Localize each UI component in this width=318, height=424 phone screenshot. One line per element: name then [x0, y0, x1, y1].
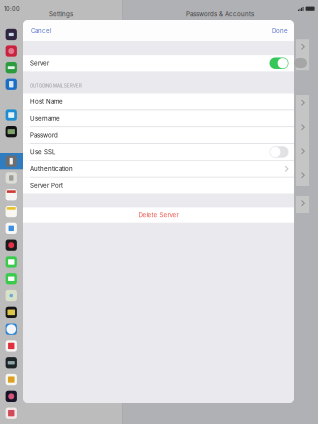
- button[interactable]: Password: [23, 127, 294, 143]
- staticText: 10:00: [4, 6, 20, 12]
- staticText: Delete Server: [138, 211, 178, 219]
- staticText: Authentication: [30, 165, 73, 172]
- staticText: Username: [30, 115, 60, 122]
- button[interactable]: Host Name: [23, 93, 294, 110]
- staticText: Cancel: [31, 27, 51, 34]
- staticText: Host Name: [30, 98, 63, 105]
- staticText: Settings: [49, 10, 73, 18]
- button[interactable]: Server: [23, 55, 294, 71]
- staticText: Use SSL: [30, 148, 55, 156]
- staticText: Password: [30, 131, 58, 139]
- staticText: Done: [272, 27, 288, 34]
- staticText: Server: [30, 59, 49, 67]
- button[interactable]: Authentication: [23, 161, 294, 177]
- button[interactable]: Done: [266, 20, 294, 41]
- button[interactable]: Username: [23, 110, 294, 126]
- button[interactable]: Use SSL: [23, 144, 294, 160]
- button[interactable]: Cancel: [23, 20, 57, 41]
- staticText: Server Port: [30, 182, 63, 189]
- button[interactable]: Server Port: [23, 177, 294, 194]
- staticText: OUTGOING MAIL SERVER: [30, 83, 82, 88]
- button[interactable]: Delete Server: [23, 207, 294, 223]
- staticText: Passwords & Accounts: [186, 10, 254, 18]
